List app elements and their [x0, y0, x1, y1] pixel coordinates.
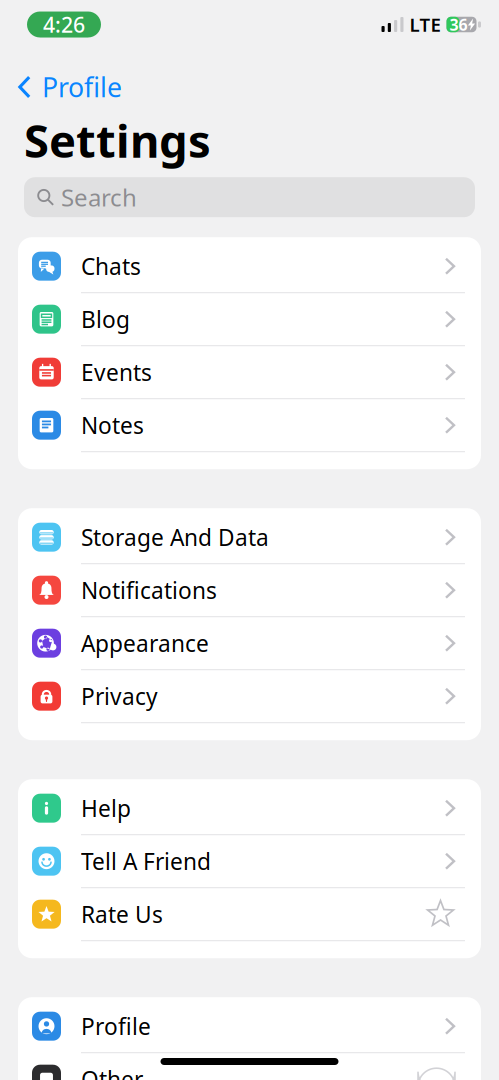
staticText: Privacy [81, 681, 158, 711]
button[interactable]: Tell A Friend [18, 835, 481, 888]
staticText: Appearance [81, 628, 209, 658]
button[interactable]: Storage And Data [18, 511, 481, 564]
staticText: Rate Us [81, 899, 163, 929]
button[interactable]: Help [18, 782, 481, 835]
staticText: Search [61, 181, 137, 213]
button[interactable]: Privacy [18, 670, 481, 723]
staticText: 36 [449, 14, 467, 35]
staticText: Notifications [81, 575, 217, 605]
button[interactable]: Notifications [18, 564, 481, 617]
staticText: Storage And Data [81, 522, 269, 552]
button[interactable]: Notes [18, 399, 481, 452]
staticText: Settings [24, 110, 211, 170]
staticText: Tell A Friend [81, 846, 211, 876]
button[interactable]: Appearance [18, 617, 481, 670]
button[interactable]: Rate Us [18, 888, 481, 941]
staticText: 4:26 [43, 10, 85, 39]
staticText: Profile [42, 69, 122, 105]
button[interactable]: Events [18, 346, 481, 399]
button[interactable]: Blog [18, 293, 481, 346]
staticText: Blog [81, 304, 130, 334]
button[interactable]: Profile [0, 68, 134, 106]
staticText: Events [81, 357, 152, 387]
staticText: Help [81, 793, 131, 823]
button[interactable]: Other [18, 1053, 481, 1080]
staticText: LTE [409, 12, 440, 37]
button[interactable]: Search [24, 177, 475, 217]
staticText: Chats [81, 251, 141, 281]
staticText: Other [81, 1064, 143, 1080]
staticText: Notes [81, 410, 144, 440]
button[interactable]: Profile [18, 1000, 481, 1053]
staticText: Profile [81, 1011, 151, 1041]
button[interactable]: Chats [18, 240, 481, 293]
